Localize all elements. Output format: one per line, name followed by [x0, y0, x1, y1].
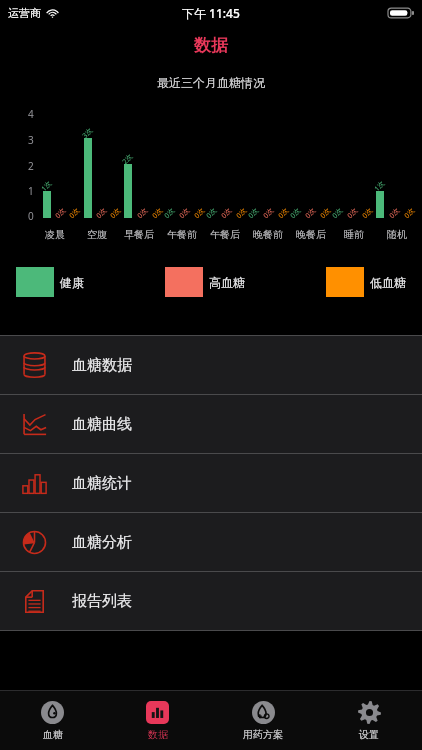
- staticText: 下午 11:45: [182, 5, 240, 21]
- staticText: 午餐后: [210, 228, 240, 241]
- button[interactable]: 报告列表: [0, 572, 422, 630]
- staticText: 随机: [387, 228, 407, 241]
- button[interactable]: 数据: [105, 691, 210, 750]
- staticText: 0次: [219, 205, 235, 221]
- staticText: 血糖曲线: [72, 415, 132, 434]
- staticText: 0次: [94, 205, 110, 221]
- staticText: 0次: [177, 205, 193, 221]
- staticText: 高血糖: [209, 275, 245, 290]
- staticText: 0次: [53, 205, 69, 221]
- button[interactable]: 血糖分析: [0, 513, 422, 571]
- staticText: 午餐前: [167, 228, 197, 241]
- staticText: 数据: [194, 35, 228, 56]
- staticText: 0次: [318, 205, 334, 221]
- staticText: 0次: [261, 205, 277, 221]
- staticText: 0次: [330, 205, 346, 221]
- staticText: 3: [28, 133, 34, 147]
- staticText: 睡前: [344, 228, 364, 241]
- staticText: 血糖统计: [72, 474, 132, 493]
- staticText: 晚餐前: [253, 228, 283, 241]
- staticText: 最近三个月血糖情况: [157, 75, 265, 90]
- staticText: 0次: [150, 205, 166, 221]
- staticText: 2次: [120, 151, 136, 167]
- staticText: 0次: [192, 205, 208, 221]
- button[interactable]: 血糖: [0, 691, 105, 750]
- staticText: 0次: [162, 205, 178, 221]
- staticText: 早餐后: [124, 228, 154, 241]
- staticText: 0次: [345, 205, 361, 221]
- staticText: 设置: [359, 728, 379, 741]
- staticText: 0次: [204, 205, 220, 221]
- staticText: 1次: [39, 178, 55, 194]
- staticText: 0次: [360, 205, 376, 221]
- staticText: 4: [28, 107, 34, 121]
- button[interactable]: 血糖曲线: [0, 395, 422, 453]
- staticText: 空腹: [87, 228, 107, 241]
- staticText: 数据: [148, 728, 168, 741]
- staticText: 晚餐后: [296, 228, 326, 241]
- staticText: 0次: [67, 205, 83, 221]
- button[interactable]: 设置: [316, 691, 422, 750]
- button[interactable]: 血糖数据: [0, 336, 422, 394]
- staticText: 0次: [246, 205, 262, 221]
- button[interactable]: 血糖统计: [0, 454, 422, 512]
- staticText: 3次: [80, 125, 96, 141]
- button[interactable]: 用药方案: [210, 691, 316, 750]
- staticText: 0次: [402, 205, 418, 221]
- staticText: 低血糖: [370, 275, 406, 290]
- staticText: 0次: [135, 205, 151, 221]
- staticText: 血糖分析: [72, 533, 132, 552]
- staticText: 健康: [60, 275, 84, 290]
- staticText: 0次: [387, 205, 403, 221]
- staticText: 报告列表: [72, 592, 132, 611]
- staticText: 运营商: [8, 6, 41, 20]
- staticText: 2: [28, 159, 34, 173]
- staticText: 凌晨: [45, 228, 65, 241]
- staticText: 0次: [276, 205, 292, 221]
- staticText: 用药方案: [243, 728, 283, 741]
- staticText: 0: [28, 209, 34, 223]
- staticText: 1次: [372, 178, 388, 194]
- staticText: 血糖: [43, 728, 63, 741]
- staticText: 0次: [303, 205, 319, 221]
- staticText: 0次: [108, 205, 124, 221]
- staticText: 0次: [288, 205, 304, 221]
- staticText: 血糖数据: [72, 356, 132, 375]
- staticText: 0次: [234, 205, 250, 221]
- staticText: 1: [28, 184, 34, 198]
